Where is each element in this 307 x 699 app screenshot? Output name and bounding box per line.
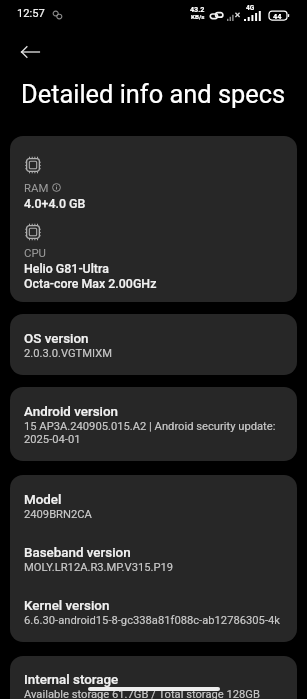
staticText: Model [24,492,62,508]
staticText: KB/s [191,13,205,20]
staticText: 15 AP3A.240905.015.A2 | Android security… [24,420,276,433]
staticText: 4G [246,4,255,12]
staticText: OS version [24,331,89,347]
staticText: Internal storage [24,672,119,688]
staticText: Kernel version [24,598,110,614]
staticText: Available storage 61.7GB / Total storage… [24,688,260,699]
button[interactable]: Android version [10,387,297,461]
staticText: 44 [273,12,282,21]
staticText: CPU [24,246,46,259]
button[interactable]: Back [13,35,47,69]
staticText: Octa-core Max 2.00GHz [24,276,157,291]
staticText: 12:57 [17,7,45,20]
button[interactable]: Model [10,475,297,642]
staticText: 6.6.30-android15-8-gc338a81f088c-ab12786… [24,614,280,627]
staticText: 2409BRN2CA [24,508,92,521]
staticText: Detailed info and specs [21,79,286,109]
staticText: MOLY.LR12A.R3.MP.V315.P19 [24,561,174,574]
staticText: 2025-04-01 [24,433,81,446]
staticText: Helio G81-Ultra [24,261,109,276]
staticText: 43.2 [190,5,205,13]
staticText: Baseband version [24,545,131,561]
button[interactable]: OS version [10,314,297,375]
button[interactable]: Internal storage [10,656,297,699]
button[interactable]: RAM [10,136,297,302]
staticText: 4.0+4.0 GB [24,196,86,211]
staticText: Android version [24,404,119,420]
staticText: 2.0.3.0.VGTMIXM [24,347,112,360]
staticText: RAM [24,181,49,194]
